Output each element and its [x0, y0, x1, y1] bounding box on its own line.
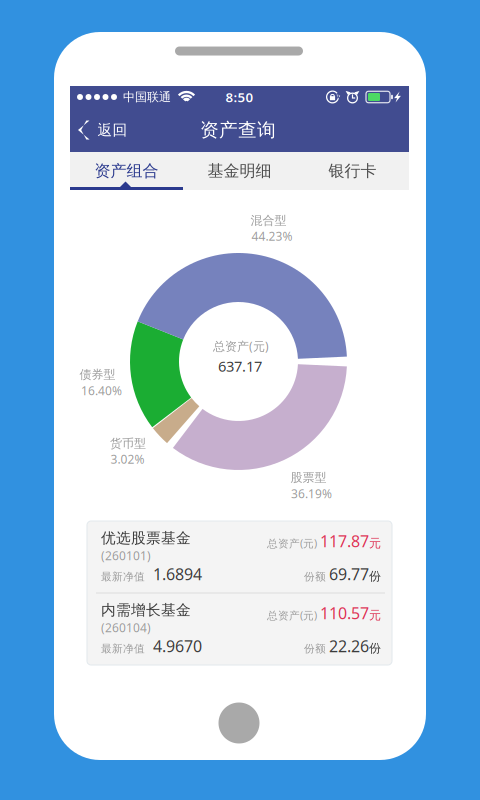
button[interactable]: 返回: [70, 108, 137, 152]
staticText: 22.26: [329, 635, 369, 657]
staticText: 总资产(元): [213, 338, 269, 354]
staticText: 637.17: [218, 356, 262, 376]
staticText: 110.57: [320, 602, 369, 624]
staticText: 3.02%: [110, 451, 144, 467]
staticText: 元: [369, 608, 381, 622]
staticText: 4.9670: [153, 635, 202, 657]
staticText: 股票型: [290, 470, 326, 485]
staticText: 返回: [97, 121, 127, 139]
staticText: 总资产(元): [267, 608, 317, 622]
staticText: 份: [369, 569, 381, 583]
staticText: 117.87: [320, 530, 369, 552]
staticText: (260104): [101, 619, 151, 635]
staticText: 1.6894: [153, 563, 202, 585]
staticText: 69.77: [329, 563, 369, 585]
staticText: (260101): [101, 547, 151, 563]
staticText: 16.40%: [81, 382, 122, 398]
staticText: 混合型: [250, 213, 286, 228]
staticText: 36.19%: [291, 485, 332, 501]
staticText: 基金明细: [207, 161, 271, 181]
staticText: 优选股票基金: [101, 529, 191, 547]
staticText: 44.23%: [251, 228, 292, 244]
staticText: 内需增长基金: [101, 601, 191, 619]
staticText: 资产查询: [200, 118, 276, 141]
staticText: 最新净值: [101, 642, 145, 655]
staticText: 银行卡: [328, 161, 376, 181]
staticText: 8:50: [225, 88, 253, 106]
button[interactable]: 银行卡: [296, 152, 409, 190]
staticText: 资产组合: [94, 161, 158, 181]
staticText: 份: [369, 641, 381, 655]
button[interactable]: 内需增长基金: [87, 593, 392, 664]
staticText: 货币型: [110, 436, 146, 451]
staticText: 最新净值: [101, 570, 145, 583]
staticText: 中国联通: [123, 90, 171, 104]
staticText: 元: [369, 536, 381, 550]
staticText: 份额: [304, 642, 326, 655]
button[interactable]: 资产组合: [70, 152, 183, 190]
staticText: 份额: [304, 570, 326, 583]
staticText: 总资产(元): [267, 536, 317, 550]
button[interactable]: 基金明细: [183, 152, 296, 190]
button[interactable]: 优选股票基金: [87, 521, 392, 592]
staticText: 债券型: [79, 367, 115, 382]
